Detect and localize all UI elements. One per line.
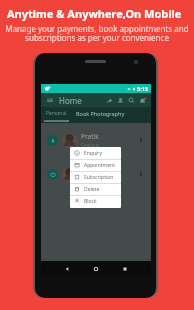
staticText: Subscription xyxy=(84,174,114,181)
staticText: Anytime & Anywhere,On Mobile xyxy=(7,6,182,21)
button[interactable]: Back xyxy=(64,266,70,272)
button[interactable]: Book Photography xyxy=(72,107,128,123)
staticText: Contacts xyxy=(81,176,100,182)
button[interactable]: Enquiry xyxy=(70,147,121,159)
staticText: 5:15 xyxy=(137,85,148,92)
button[interactable]: Rahul xyxy=(41,157,151,191)
button[interactable]: Contacts xyxy=(116,96,125,105)
staticText: Book Photography xyxy=(76,110,125,117)
staticText: Manage your payments, book appointments … xyxy=(3,23,191,44)
button[interactable]: Pratik xyxy=(41,123,151,157)
staticText: Rahul xyxy=(81,166,99,175)
button[interactable]: Home xyxy=(93,266,99,272)
button[interactable]: More options xyxy=(137,170,145,178)
button[interactable]: Personal xyxy=(41,107,72,123)
button[interactable]: More options xyxy=(137,136,145,144)
button[interactable]: Subscription xyxy=(70,171,121,183)
button[interactable]: Delete xyxy=(70,183,121,195)
button[interactable]: Open navigation menu xyxy=(46,96,54,104)
staticText: Personal xyxy=(46,110,67,117)
button[interactable]: Notifications xyxy=(138,96,147,105)
button[interactable]: Search xyxy=(127,96,136,105)
staticText: Block xyxy=(84,198,97,205)
button[interactable]: Tag xyxy=(105,96,114,105)
staticText: Enquiry xyxy=(84,150,102,157)
staticText: Pratik xyxy=(81,132,99,141)
button[interactable]: Appointment xyxy=(70,159,121,171)
staticText: Contacts xyxy=(81,142,100,148)
button[interactable]: Block xyxy=(70,195,121,207)
button[interactable]: Recent apps xyxy=(122,266,128,272)
staticText: Home xyxy=(59,95,82,106)
staticText: Delete xyxy=(84,186,100,193)
staticText: Appointment xyxy=(84,162,115,169)
